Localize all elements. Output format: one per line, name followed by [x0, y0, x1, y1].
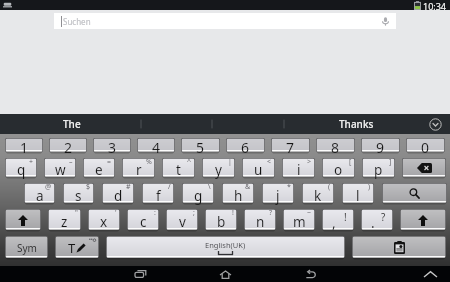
staticText: p	[374, 161, 383, 179]
staticText: q	[17, 161, 26, 179]
button[interactable]: q	[5, 158, 37, 178]
button[interactable]: Voice search	[379, 15, 392, 28]
button[interactable]: Recent apps	[129, 266, 151, 282]
staticText: $	[86, 182, 91, 192]
button[interactable]: e	[83, 158, 115, 178]
staticText: 2	[64, 138, 73, 153]
staticText: ,	[332, 214, 336, 232]
staticText: 9	[376, 138, 385, 153]
button[interactable]: m	[283, 209, 315, 231]
staticText: 8	[331, 138, 340, 153]
staticText: e	[95, 161, 103, 179]
button[interactable]: b	[205, 209, 237, 231]
staticText: ?	[381, 210, 386, 224]
staticText: x	[100, 213, 108, 231]
staticText: )	[368, 182, 371, 192]
button[interactable]: Back	[299, 266, 321, 282]
button[interactable]: n	[244, 209, 276, 231]
button[interactable]: f	[142, 183, 174, 204]
button[interactable]: Clipboard	[352, 236, 446, 259]
button[interactable]: c	[127, 209, 159, 231]
staticText: n	[256, 213, 265, 231]
button[interactable]: Sym	[5, 236, 48, 259]
staticText: d	[114, 187, 123, 205]
staticText: 5	[196, 138, 205, 153]
staticText: Thanks	[339, 117, 374, 131]
staticText: 6	[241, 138, 250, 153]
button[interactable]: Handwriting input	[55, 236, 99, 259]
button[interactable]: h	[222, 183, 254, 204]
button[interactable]: Backspace	[402, 158, 446, 178]
button[interactable]: j	[262, 183, 294, 204]
button[interactable]: o	[322, 158, 355, 178]
button[interactable]: Search	[382, 183, 447, 204]
button[interactable]: x	[88, 209, 120, 231]
button[interactable]: 6	[226, 138, 265, 153]
staticText: '	[115, 208, 117, 218]
staticText: \	[208, 182, 211, 192]
button[interactable]: Suchen	[54, 13, 396, 29]
button[interactable]: 4	[137, 138, 175, 153]
button[interactable]: .	[361, 209, 393, 231]
button[interactable]: ,	[322, 209, 354, 231]
staticText: =	[107, 157, 112, 167]
staticText: c	[140, 213, 147, 231]
button[interactable]: i	[282, 158, 315, 178]
staticText: j	[276, 187, 280, 205]
staticText: o	[334, 161, 343, 179]
staticText: ]	[389, 157, 392, 167]
button[interactable]: k	[302, 183, 334, 204]
button[interactable]: w	[44, 158, 76, 178]
button[interactable]: v	[166, 209, 198, 231]
staticText: m	[293, 213, 306, 231]
button[interactable]: t	[162, 158, 195, 178]
button[interactable]: u	[242, 158, 275, 178]
button[interactable]: The	[54, 114, 89, 134]
button[interactable]: 2	[49, 138, 87, 153]
button[interactable]: Space	[106, 236, 345, 259]
staticText: |	[228, 157, 232, 167]
staticText: –	[69, 157, 73, 167]
button[interactable]: 5	[181, 138, 220, 153]
button[interactable]: Home	[214, 266, 236, 282]
button[interactable]: p	[362, 158, 395, 178]
button[interactable]: s	[63, 183, 94, 204]
button[interactable]: Hide keyboard	[422, 268, 438, 280]
staticText: a	[36, 187, 44, 205]
staticText: g	[194, 187, 203, 205]
button[interactable]: g	[182, 183, 214, 204]
staticText: @	[45, 182, 52, 192]
button[interactable]: z	[48, 209, 81, 231]
staticText: English(UK)	[205, 240, 246, 250]
button[interactable]: 0	[406, 138, 445, 153]
button[interactable]: Expand suggestions	[429, 118, 442, 131]
staticText: /	[168, 182, 171, 192]
button[interactable]: 3	[93, 138, 131, 153]
button[interactable]: l	[342, 183, 374, 204]
staticText: !	[232, 208, 234, 218]
button[interactable]: Shift	[5, 209, 41, 231]
button[interactable]: 7	[271, 138, 310, 153]
button[interactable]: d	[102, 183, 134, 204]
staticText: k	[314, 187, 322, 205]
staticText: +	[29, 157, 34, 167]
button[interactable]: 1	[5, 138, 43, 153]
button[interactable]: r	[122, 158, 155, 178]
staticText: f	[156, 187, 161, 205]
staticText: t	[176, 161, 181, 179]
staticText: 7	[286, 138, 295, 153]
staticText: ~	[307, 208, 312, 218]
button[interactable]: a	[24, 183, 55, 204]
staticText: 0	[421, 138, 430, 153]
button[interactable]: Thanks	[337, 114, 375, 134]
button[interactable]: Shift	[400, 209, 446, 231]
staticText: #	[126, 182, 131, 192]
button[interactable]: 9	[361, 138, 400, 153]
staticText: %	[146, 157, 152, 167]
staticText: i	[297, 161, 301, 179]
button[interactable]: y	[202, 158, 235, 178]
staticText: b	[217, 213, 226, 231]
button[interactable]: 8	[316, 138, 355, 153]
staticText: z	[61, 213, 68, 231]
staticText: 4	[152, 138, 161, 153]
